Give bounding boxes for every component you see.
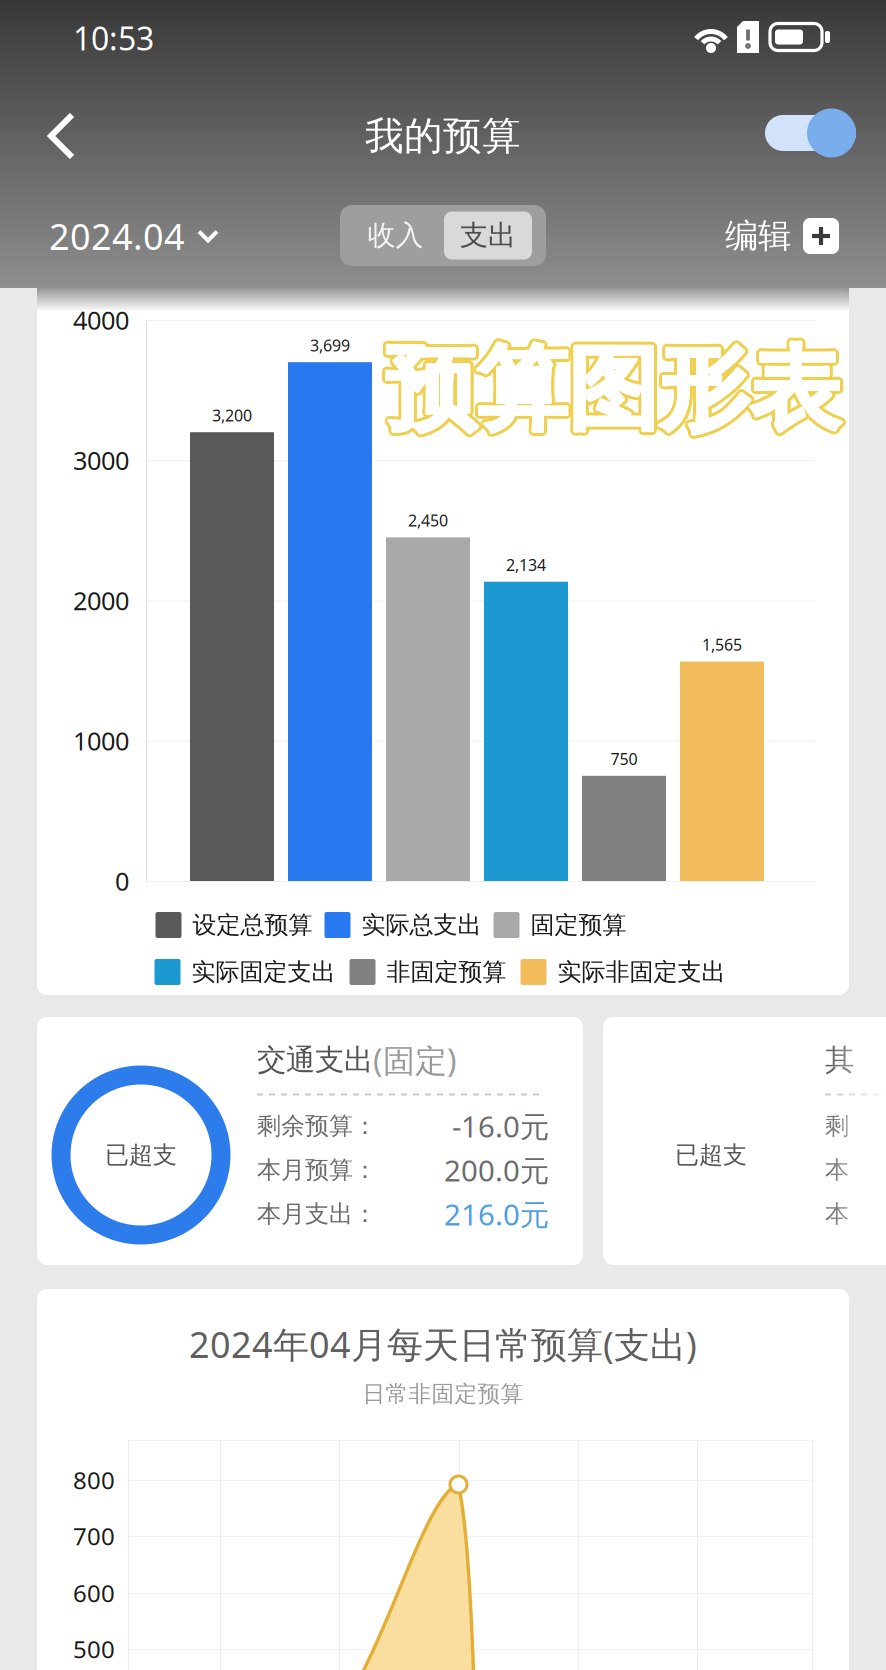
staticText: 编辑 xyxy=(725,215,791,256)
staticText: 750 xyxy=(610,748,637,769)
staticText: 预算图形表 xyxy=(382,337,837,449)
staticText: 2000 xyxy=(73,584,129,617)
staticText: 3,200 xyxy=(212,405,252,426)
button[interactable]: 已超支 xyxy=(37,1017,583,1265)
staticText: 预算图形表 xyxy=(386,335,841,446)
staticText: 216.0元 xyxy=(444,1194,549,1233)
staticText: 预算图形表 xyxy=(382,331,837,443)
staticText: 我的预算 xyxy=(365,112,521,160)
staticText: 4000 xyxy=(73,303,129,337)
staticText: 500 xyxy=(73,1633,115,1665)
staticText: 预算图形表 xyxy=(385,333,840,445)
staticText: 预算图形表 xyxy=(385,330,840,442)
staticText: 预算图形表 xyxy=(384,338,839,450)
staticText: 非固定预算 xyxy=(386,957,506,987)
staticText: 已超支 xyxy=(105,1140,177,1170)
staticText: 800 xyxy=(73,1464,115,1496)
button[interactable]: 已超支 xyxy=(603,1017,886,1265)
staticText: 预算图形表 xyxy=(385,333,840,445)
button[interactable]: 收入 xyxy=(347,211,444,259)
staticText: 本月预算： xyxy=(257,1155,377,1185)
staticText: 600 xyxy=(73,1577,115,1609)
button[interactable]: Back xyxy=(10,100,114,172)
staticText: 2024.04 xyxy=(49,212,185,260)
staticText: 预算图形表 xyxy=(384,334,839,445)
staticText: 预算图形表 xyxy=(384,335,839,446)
staticText: 支出 xyxy=(460,218,516,253)
staticText: 预算图形表 xyxy=(388,331,843,443)
staticText: 实际总支出 xyxy=(361,910,481,940)
staticText: 预算图形表 xyxy=(381,334,836,446)
staticText: 2,134 xyxy=(506,554,546,575)
staticText: 预算图形表 xyxy=(387,330,842,442)
staticText: 剩 xyxy=(825,1111,849,1141)
staticText: 实际固定支出 xyxy=(191,957,335,987)
staticText: 实际非固定支出 xyxy=(557,957,725,987)
staticText: 预算图形表 xyxy=(384,330,839,442)
staticText: 其 xyxy=(825,1042,854,1078)
staticText: -16.0元 xyxy=(452,1106,549,1145)
staticText: 设定总预算 xyxy=(192,910,312,940)
staticText: 1000 xyxy=(73,724,129,757)
staticText: 预算图形表 xyxy=(390,334,845,446)
staticText: 0 xyxy=(115,864,129,898)
staticText: (固定) xyxy=(373,1039,457,1081)
staticText: 固定预算 xyxy=(530,910,626,940)
button[interactable]: Toggle budget xyxy=(736,99,856,167)
staticText: 剩余预算： xyxy=(257,1111,377,1141)
staticText: 本 xyxy=(825,1155,849,1185)
staticText: 预算图形表 xyxy=(385,338,840,450)
staticText: 200.0元 xyxy=(444,1150,549,1189)
staticText: 本 xyxy=(825,1199,849,1229)
staticText: 交通支出 xyxy=(257,1042,373,1078)
staticText: 预算图形表 xyxy=(382,336,837,447)
button[interactable]: 编辑 xyxy=(732,203,844,269)
staticText: 收入 xyxy=(367,218,423,253)
staticText: 3,699 xyxy=(310,335,350,356)
staticText: 预算图形表 xyxy=(382,333,837,444)
staticText: 预算图形表 xyxy=(389,333,844,444)
staticText: 已超支 xyxy=(675,1140,747,1170)
staticText: 1,565 xyxy=(702,634,742,655)
button[interactable]: 支出 xyxy=(444,211,532,259)
staticText: 预算图形表 xyxy=(386,335,841,446)
staticText: 2024年04月每天日常预算(支出) xyxy=(189,1320,697,1368)
staticText: 预算图形表 xyxy=(386,333,841,445)
staticText: 700 xyxy=(73,1520,115,1552)
staticText: 预算图形表 xyxy=(389,336,844,447)
staticText: 预算图形表 xyxy=(387,334,842,446)
staticText: 预算图形表 xyxy=(385,333,840,445)
staticText: 10:53 xyxy=(73,17,154,59)
staticText: 预算图形表 xyxy=(386,333,841,445)
staticText: 2,450 xyxy=(408,510,448,531)
button[interactable]: 2024.04 xyxy=(50,203,230,269)
staticText: 预算图形表 xyxy=(386,334,841,445)
staticText: 3000 xyxy=(73,443,129,477)
staticText: 预算图形表 xyxy=(385,335,840,447)
staticText: 预算图形表 xyxy=(384,334,839,446)
staticText: 预算图形表 xyxy=(385,334,840,446)
staticText: 预算图形表 xyxy=(388,337,843,449)
staticText: 预算图形表 xyxy=(386,335,841,447)
staticText: 本月支出： xyxy=(257,1199,377,1229)
staticText: 预算图形表 xyxy=(385,335,840,447)
staticText: 日常非固定预算 xyxy=(362,1380,523,1408)
staticText: 预算图形表 xyxy=(387,338,842,450)
staticText: 预算图形表 xyxy=(385,335,840,446)
